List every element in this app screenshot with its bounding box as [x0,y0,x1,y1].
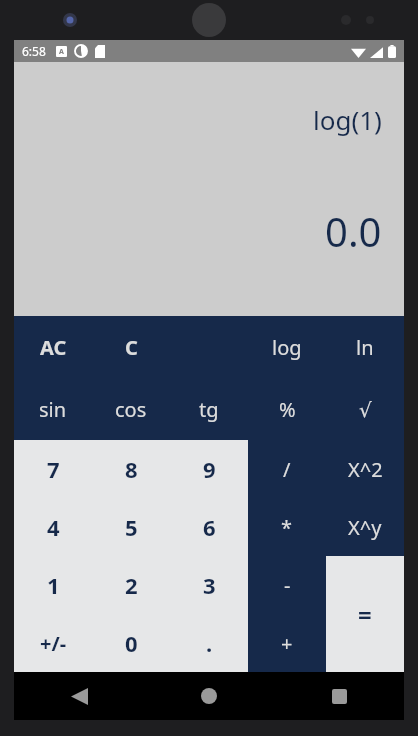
button[interactable]: % [248,378,326,440]
staticText: 6:58 [22,43,46,59]
staticText: sin [39,396,67,423]
button[interactable]: * [248,498,326,556]
staticText: 1 [47,570,60,600]
button[interactable]: 3 [170,556,248,614]
staticText: 5 [125,512,138,542]
staticText: X^y [348,514,382,541]
staticText: 6 [203,512,216,542]
button[interactable]: 1 [14,556,92,614]
staticText: 2 [125,570,138,600]
staticText: - [284,572,291,599]
button[interactable]: Recent apps [274,672,404,720]
staticText: tg [199,396,219,423]
button[interactable]: 5 [92,498,170,556]
button[interactable]: sin [14,378,92,440]
button[interactable]: X^y [326,498,404,556]
button[interactable]: tg [170,378,248,440]
staticText: % [279,396,296,423]
button[interactable]: 0 [92,614,170,672]
button[interactable]: 7 [14,440,92,498]
staticText: = [358,598,372,631]
button[interactable]: C [92,316,170,378]
button[interactable]: +/- [14,614,92,672]
button[interactable]: Home [144,672,274,720]
staticText: ln [356,334,374,361]
staticText: C [125,334,138,361]
button[interactable]: 2 [92,556,170,614]
staticText: 0.0 [325,204,382,258]
staticText: cos [115,396,147,423]
staticText: √ [359,398,372,421]
staticText: 3 [203,570,216,600]
button[interactable]: / [248,440,326,498]
button[interactable]: X^2 [326,440,404,498]
button[interactable]: + [248,614,326,672]
staticText: AC [40,334,67,361]
button[interactable]: log [248,316,326,378]
button[interactable]: 6 [170,498,248,556]
staticText: A [59,47,64,57]
button[interactable]: 9 [170,440,248,498]
button[interactable]: ln [326,316,404,378]
staticText: * [281,514,293,541]
staticText: + [281,630,293,657]
button[interactable]: Back [14,672,144,720]
button[interactable]: - [248,556,326,614]
staticText: / [283,456,291,483]
staticText: 0 [125,628,138,658]
button[interactable]: √ [326,378,404,440]
staticText: 8 [125,454,138,484]
staticText: log [272,334,302,361]
staticText: +/- [40,630,67,657]
staticText: X^2 [348,456,383,483]
button[interactable]: 8 [92,440,170,498]
staticText: 9 [203,454,216,484]
staticText: 7 [47,454,60,484]
button[interactable]: 4 [14,498,92,556]
staticText: log(1) [313,102,382,137]
button[interactable]: AC [14,316,92,378]
button[interactable]: cos [92,378,170,440]
button[interactable]: = [326,556,404,672]
staticText: . [206,628,213,658]
staticText: 4 [47,512,60,542]
button[interactable]: . [170,614,248,672]
